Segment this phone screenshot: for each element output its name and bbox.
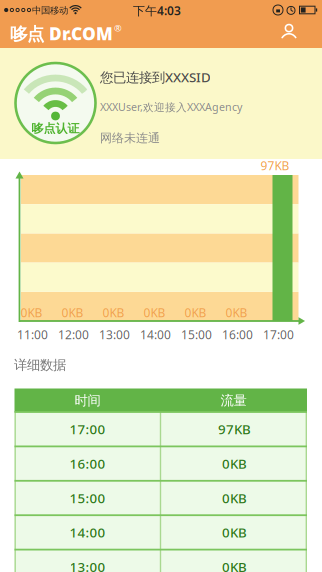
- staticText: 16:00: [69, 455, 105, 472]
- staticText: 16:00: [222, 326, 253, 342]
- staticText: 哆点 Dr.COM: [10, 22, 113, 45]
- staticText: 17:00: [263, 326, 294, 342]
- staticText: 中国移动: [32, 5, 68, 16]
- staticText: 0KB: [20, 304, 42, 320]
- staticText: 12:00: [58, 326, 89, 342]
- staticText: 97KB: [260, 157, 289, 173]
- staticText: 哆点认证: [31, 121, 79, 136]
- staticText: 0KB: [61, 304, 83, 320]
- staticText: 0KB: [225, 304, 247, 320]
- staticText: 13:00: [69, 558, 105, 572]
- staticText: 0KB: [143, 304, 165, 320]
- staticText: 下午4:03: [133, 2, 181, 18]
- staticText: 0KB: [184, 304, 206, 320]
- staticText: 13:00: [99, 326, 130, 342]
- staticText: 您已连接到XXXSID: [100, 68, 211, 86]
- staticText: 17:00: [69, 420, 105, 438]
- staticText: 详细数据: [14, 357, 66, 373]
- staticText: 0KB: [102, 304, 124, 320]
- staticText: 网络未连通: [100, 131, 160, 145]
- staticText: 97KB: [218, 420, 251, 438]
- staticText: 0KB: [222, 558, 247, 572]
- button[interactable]: 账户: [269, 19, 309, 47]
- staticText: 0KB: [222, 489, 247, 507]
- staticText: 时间: [74, 392, 100, 409]
- staticText: 14:00: [69, 523, 105, 541]
- staticText: 11:00: [17, 326, 48, 342]
- staticText: 15:00: [181, 326, 212, 342]
- staticText: 14:00: [140, 326, 171, 342]
- staticText: 15:00: [69, 489, 105, 507]
- staticText: 0KB: [222, 523, 247, 541]
- staticText: XXXUser,欢迎接入XXXAgency: [100, 100, 242, 114]
- staticText: 流量: [220, 392, 246, 409]
- staticText: 0KB: [222, 455, 247, 472]
- staticText: ®: [114, 22, 122, 34]
